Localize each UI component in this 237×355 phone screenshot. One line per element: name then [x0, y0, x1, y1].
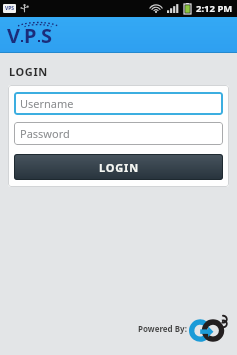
button[interactable]: LOGIN [14, 154, 223, 180]
staticText: Powered By: [138, 323, 187, 334]
button[interactable]: Powered By: [138, 315, 229, 341]
staticText: Username [20, 96, 74, 111]
staticText: LOGIN [99, 160, 139, 175]
other: GO3 logo [189, 315, 229, 341]
staticText: LOGIN [9, 64, 48, 79]
staticText: 2:12 PM [196, 2, 233, 15]
button[interactable]: Username [14, 92, 223, 115]
button[interactable]: Password [14, 122, 223, 145]
staticText: S [41, 22, 53, 47]
staticText: Password [20, 126, 70, 141]
staticText: VPS [5, 5, 15, 12]
staticText: P [24, 22, 37, 47]
staticText: V [7, 22, 20, 47]
